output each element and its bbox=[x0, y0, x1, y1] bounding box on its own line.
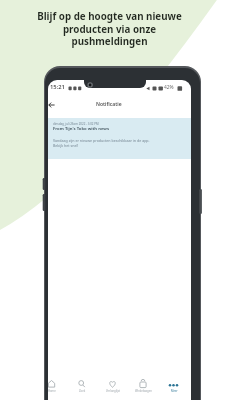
staticText: Vandaag zijn er nieuwe producten beschik… bbox=[53, 138, 150, 148]
staticText: Winkelwagen bbox=[135, 389, 152, 393]
button[interactable] bbox=[48, 98, 66, 112]
button[interactable]: Zoek bbox=[68, 376, 96, 400]
button[interactable]: Verlanglijst bbox=[99, 376, 127, 400]
button[interactable]: Home bbox=[48, 376, 66, 400]
staticText: Meer bbox=[171, 389, 178, 393]
staticText: Home bbox=[48, 389, 56, 393]
staticText: From Tijn's Toko with news bbox=[53, 126, 109, 132]
staticText: Notificatie bbox=[96, 101, 122, 108]
staticText: 42% bbox=[164, 84, 174, 91]
staticText: Verlanglijst bbox=[106, 389, 121, 393]
button[interactable]: Winkelwagen bbox=[129, 376, 157, 400]
button[interactable]: dinsdag, juli 26om 2022 - 3:02 PM bbox=[48, 118, 191, 159]
staticText: Zoek bbox=[79, 389, 86, 393]
staticText: Blijf op de hoogte van nieuwe producten … bbox=[0, 10, 222, 47]
staticText: dinsdag, juli 26om 2022 - 3:02 PM bbox=[53, 122, 99, 126]
staticText: 15:21 bbox=[50, 83, 65, 91]
button[interactable]: Meer bbox=[160, 376, 188, 400]
